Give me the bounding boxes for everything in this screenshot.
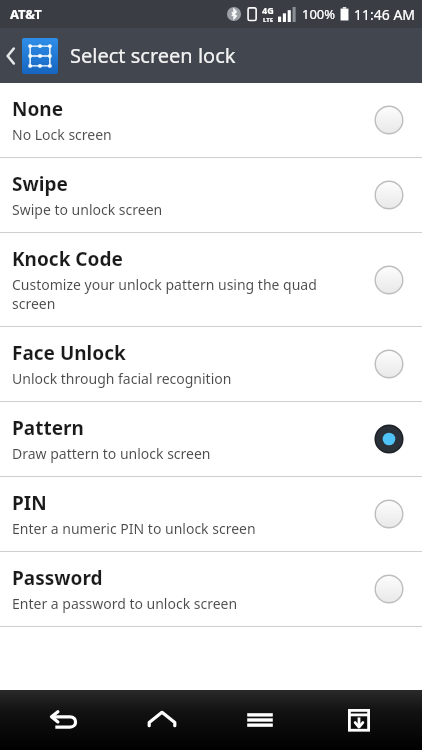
staticText: Customize your unlock pattern using the … (12, 275, 358, 313)
staticText: 4G (262, 4, 274, 16)
button[interactable]: Back (0, 28, 422, 83)
button[interactable]: Face Unlock (0, 327, 422, 401)
button[interactable]: Home (127, 692, 197, 748)
button[interactable]: Back (28, 692, 98, 748)
staticText: Swipe (12, 171, 68, 197)
staticText: Unlock through facial recognition (12, 369, 232, 388)
staticText: None (12, 96, 64, 122)
staticText: Pattern (12, 415, 84, 441)
staticText: Knock Code (12, 246, 123, 272)
button[interactable]: Pattern (0, 402, 422, 476)
staticText: 11:46 AM (354, 5, 416, 24)
button[interactable]: Not selected (372, 572, 406, 606)
button[interactable]: Capture screen (324, 692, 394, 748)
staticText: 100% (302, 5, 336, 23)
button[interactable]: Selected (372, 422, 406, 456)
staticText: Enter a numeric PIN to unlock screen (12, 519, 256, 538)
button[interactable]: None (0, 83, 422, 157)
button[interactable]: Not selected (372, 103, 406, 137)
button[interactable]: Password (0, 552, 422, 626)
staticText: Swipe to unlock screen (12, 200, 163, 219)
staticText: PIN (12, 490, 47, 516)
button[interactable]: Not selected (372, 497, 406, 531)
staticText: Select screen lock (70, 42, 236, 69)
button[interactable]: Knock Code (0, 233, 422, 326)
button[interactable]: Menu (225, 692, 295, 748)
staticText: AT&T (10, 5, 42, 23)
staticText: Draw pattern to unlock screen (12, 444, 211, 463)
staticText: No Lock screen (12, 125, 112, 144)
staticText: LTE (263, 16, 274, 24)
button[interactable]: Not selected (372, 263, 406, 297)
staticText: Face Unlock (12, 340, 126, 366)
button[interactable]: PIN (0, 477, 422, 551)
button[interactable]: Swipe (0, 158, 422, 232)
button[interactable]: Not selected (372, 347, 406, 381)
other: Back (4, 45, 18, 67)
button[interactable]: Not selected (372, 178, 406, 212)
staticText: Enter a password to unlock screen (12, 594, 238, 613)
staticText: Password (12, 565, 103, 591)
